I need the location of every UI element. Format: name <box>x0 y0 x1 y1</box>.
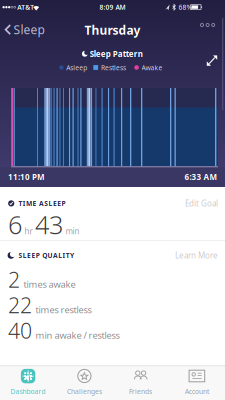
staticText: 22 <box>8 291 32 319</box>
staticText: AT&T <box>17 3 34 12</box>
staticText: 40 <box>8 316 32 345</box>
staticText: hr <box>24 226 32 236</box>
staticText: SLEEP QUALITY <box>18 251 74 260</box>
staticText: times awake <box>23 278 75 290</box>
staticText: TIME ASLEEP <box>18 199 65 208</box>
staticText: 68% <box>178 3 192 12</box>
staticText: Challenges <box>67 387 102 396</box>
staticText: Friends <box>129 387 152 396</box>
staticText: Sleep Pattern <box>90 49 143 59</box>
staticText: 43 <box>35 208 63 241</box>
staticText: 11:10 PM <box>8 172 45 182</box>
staticText: Asleep <box>66 63 87 72</box>
staticText: 6:33 AM <box>184 172 217 182</box>
staticText: 8:09 AM <box>99 3 125 12</box>
staticText: 2 <box>8 265 20 294</box>
staticText: Awake <box>141 63 162 72</box>
staticText: Dashboard <box>11 387 46 396</box>
staticText: 6 <box>8 208 22 241</box>
staticText: min awake / restless <box>35 329 119 341</box>
staticText: Learn More <box>175 250 218 261</box>
staticText: Restless <box>101 63 126 72</box>
staticText: Edit Goal <box>185 198 218 209</box>
staticText: min <box>65 226 79 236</box>
staticText: Account <box>185 387 209 396</box>
staticText: times restless <box>35 303 91 316</box>
staticText: Thursday <box>84 22 140 38</box>
staticText: Sleep <box>13 22 44 37</box>
